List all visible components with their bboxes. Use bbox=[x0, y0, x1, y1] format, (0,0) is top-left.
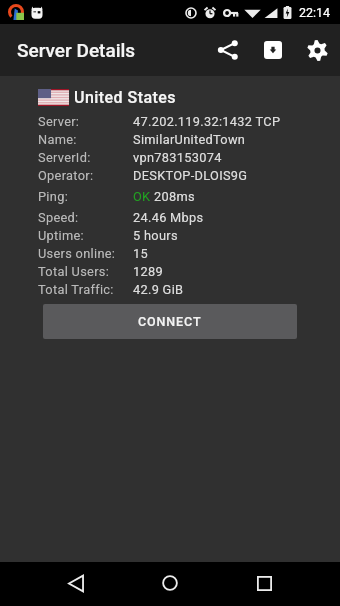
button[interactable]: CONNECT bbox=[43, 304, 297, 339]
staticText: Users online: bbox=[38, 246, 116, 261]
staticText: CONNECT bbox=[138, 314, 202, 329]
button[interactable]: Home bbox=[140, 562, 200, 606]
staticText: United States bbox=[74, 88, 176, 107]
button[interactable]: Back bbox=[46, 562, 106, 606]
staticText: vpn783153074 bbox=[133, 150, 222, 165]
staticText: Uptime: bbox=[38, 228, 84, 243]
staticText: Operator: bbox=[38, 168, 94, 183]
button[interactable]: Recents bbox=[234, 562, 294, 606]
staticText: OK bbox=[133, 189, 151, 204]
staticText: Ping: bbox=[38, 189, 69, 204]
staticText: Name: bbox=[38, 132, 77, 147]
staticText: Total Users: bbox=[38, 264, 110, 279]
button[interactable]: Save bbox=[250, 24, 295, 76]
staticText: 24.46 Mbps bbox=[133, 210, 204, 225]
staticText: 1289 bbox=[133, 264, 163, 279]
staticText: Server Details bbox=[17, 39, 136, 61]
staticText: ServerId: bbox=[38, 150, 91, 165]
staticText: 22:14 bbox=[299, 5, 331, 20]
button[interactable]: Share bbox=[205, 24, 250, 76]
staticText: 5 hours bbox=[133, 228, 178, 243]
staticText: Server: bbox=[38, 114, 80, 129]
staticText: Total Traffic: bbox=[38, 282, 114, 297]
staticText: SimilarUnitedTown bbox=[133, 132, 246, 147]
staticText: 42.9 GiB bbox=[133, 282, 184, 297]
staticText: 47.202.119.32:1432 TCP bbox=[133, 114, 281, 129]
staticText: 15 bbox=[133, 246, 148, 261]
staticText: Speed: bbox=[38, 210, 79, 225]
staticText: 208ms bbox=[154, 189, 195, 204]
staticText: DESKTOP-DLOIS9G bbox=[133, 168, 248, 183]
button[interactable]: Settings bbox=[295, 24, 340, 76]
